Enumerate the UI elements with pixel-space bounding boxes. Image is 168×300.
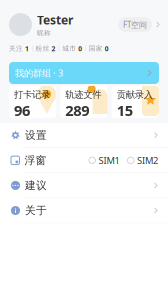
button[interactable]: 关注 — [9, 44, 29, 53]
staticText: 我的群组 · 3 — [15, 67, 63, 79]
staticText: 建议 — [25, 179, 47, 192]
staticText: 1 — [25, 44, 29, 53]
staticText: Tester — [37, 12, 73, 28]
button[interactable]: FT空间 — [118, 17, 160, 32]
button[interactable]: SIM2 — [127, 154, 158, 166]
staticText: 289 — [65, 100, 89, 120]
button[interactable]: 我的群组 · 3 — [9, 62, 159, 84]
staticText: 关注 — [9, 44, 23, 53]
staticText: SIM2 — [137, 154, 158, 166]
button[interactable]: 打卡记录 — [9, 86, 56, 118]
staticText: 15 — [117, 100, 133, 120]
button[interactable]: SIM1 — [89, 154, 119, 166]
button[interactable]: 粉丝 — [36, 44, 56, 53]
staticText: 关于 — [25, 204, 47, 217]
button[interactable]: 轨迹文件 — [60, 86, 108, 118]
staticText: 打卡记录 — [14, 89, 50, 100]
staticText: SIM1 — [98, 154, 119, 166]
staticText: 轨迹文件 — [65, 89, 101, 100]
staticText: 城市 — [62, 44, 76, 53]
button[interactable]: 贡献录入 — [112, 86, 159, 118]
button[interactable]: 设置 — [0, 123, 168, 148]
staticText: 国家 — [89, 44, 103, 53]
staticText: 96 — [14, 100, 30, 120]
button[interactable]: 关于 — [0, 198, 168, 223]
staticText: 浮窗 — [24, 154, 46, 167]
button[interactable]: 建议 — [0, 173, 168, 198]
staticText: 昵称 — [37, 29, 51, 37]
staticText: 设置 — [25, 129, 47, 142]
staticText: FT空间 — [123, 19, 147, 30]
staticText: 2 — [52, 44, 56, 53]
button[interactable]: 城市 — [62, 44, 82, 53]
staticText: 粉丝 — [36, 44, 50, 53]
button[interactable]: 国家 — [89, 44, 109, 53]
staticText: 0 — [105, 44, 109, 53]
button[interactable]: 浮窗 — [0, 148, 168, 173]
staticText: 贡献录入 — [117, 89, 153, 100]
staticText: 0 — [78, 44, 82, 53]
